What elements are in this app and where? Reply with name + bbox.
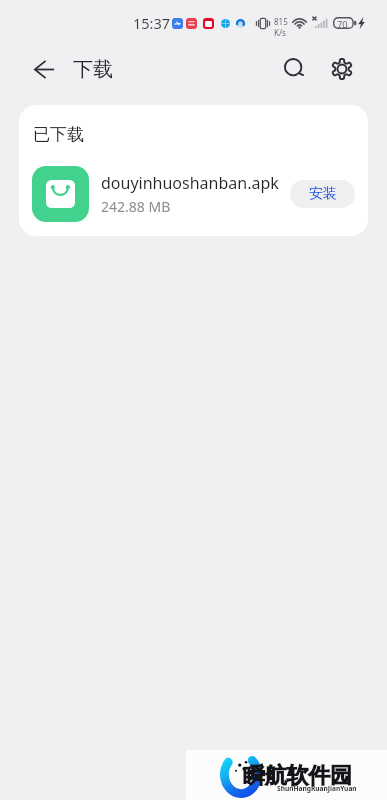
staticText: 242.88 MB: [101, 197, 171, 216]
staticText: 下载: [73, 57, 113, 82]
staticText: 瞬航软件园: [243, 762, 352, 790]
button[interactable]: Search: [275, 48, 312, 85]
button[interactable]: Settings: [323, 50, 360, 87]
staticText: 70: [337, 18, 348, 31]
staticText: 安装: [309, 185, 337, 203]
staticText: ShunHangRuanJianYuan: [277, 784, 357, 793]
button[interactable]: douyinhuoshanban.apk: [32, 166, 355, 222]
staticText: K/s: [274, 27, 286, 38]
button[interactable]: Back: [26, 51, 63, 88]
button[interactable]: 安装: [290, 180, 355, 208]
staticText: 已下载: [33, 124, 84, 145]
staticText: 15:37: [133, 13, 171, 33]
staticText: 815: [274, 16, 288, 27]
staticText: douyinhuoshanban.apk: [101, 172, 279, 194]
